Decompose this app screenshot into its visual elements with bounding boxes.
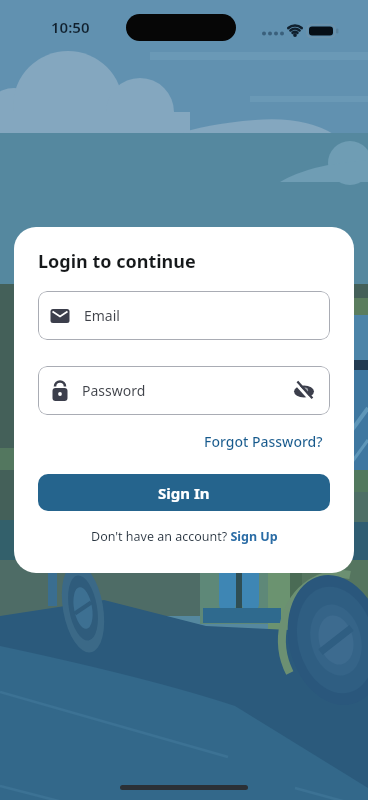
staticText: Email — [84, 306, 120, 325]
button[interactable] — [284, 366, 324, 415]
button[interactable]: Email — [38, 291, 330, 340]
staticText: 10:50 — [51, 17, 90, 37]
staticText: Login to continue — [38, 249, 196, 274]
staticText: Sign In — [158, 483, 210, 503]
button[interactable]: Password — [38, 366, 330, 415]
staticText: Password — [82, 381, 146, 400]
button[interactable]: Don't have an account? Sign Up — [38, 528, 330, 545]
button[interactable]: Sign In — [38, 474, 330, 511]
button[interactable]: Forgot Password? — [204, 432, 323, 451]
staticText: Don't have an account? Sign Up — [91, 528, 278, 545]
